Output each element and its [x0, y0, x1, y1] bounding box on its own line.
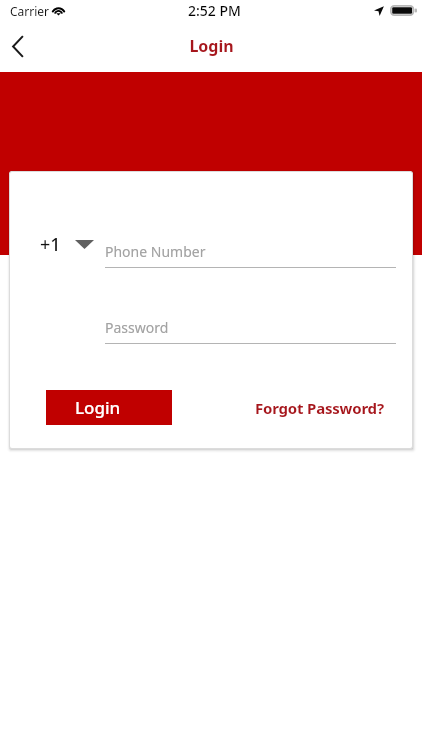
button[interactable]: Login	[46, 390, 172, 425]
staticText: Phone Number	[105, 242, 206, 261]
staticText: +1	[40, 232, 61, 257]
staticText: Password	[105, 318, 169, 337]
staticText: Forgot Password?	[255, 398, 384, 418]
staticText: Login	[189, 35, 234, 57]
button[interactable]: Phone Number	[105, 232, 396, 268]
other: Wi-Fi	[51, 4, 66, 15]
staticText: 2:52 PM	[188, 1, 241, 20]
button[interactable]: Password	[105, 308, 396, 344]
button[interactable]: Select country code	[36, 228, 110, 266]
staticText: Login	[75, 396, 121, 419]
button[interactable]: Back	[0, 28, 38, 70]
other: Battery	[390, 5, 417, 16]
other: Location	[374, 6, 384, 16]
button[interactable]: Forgot Password?	[246, 390, 392, 425]
staticText: Carrier	[10, 3, 50, 19]
